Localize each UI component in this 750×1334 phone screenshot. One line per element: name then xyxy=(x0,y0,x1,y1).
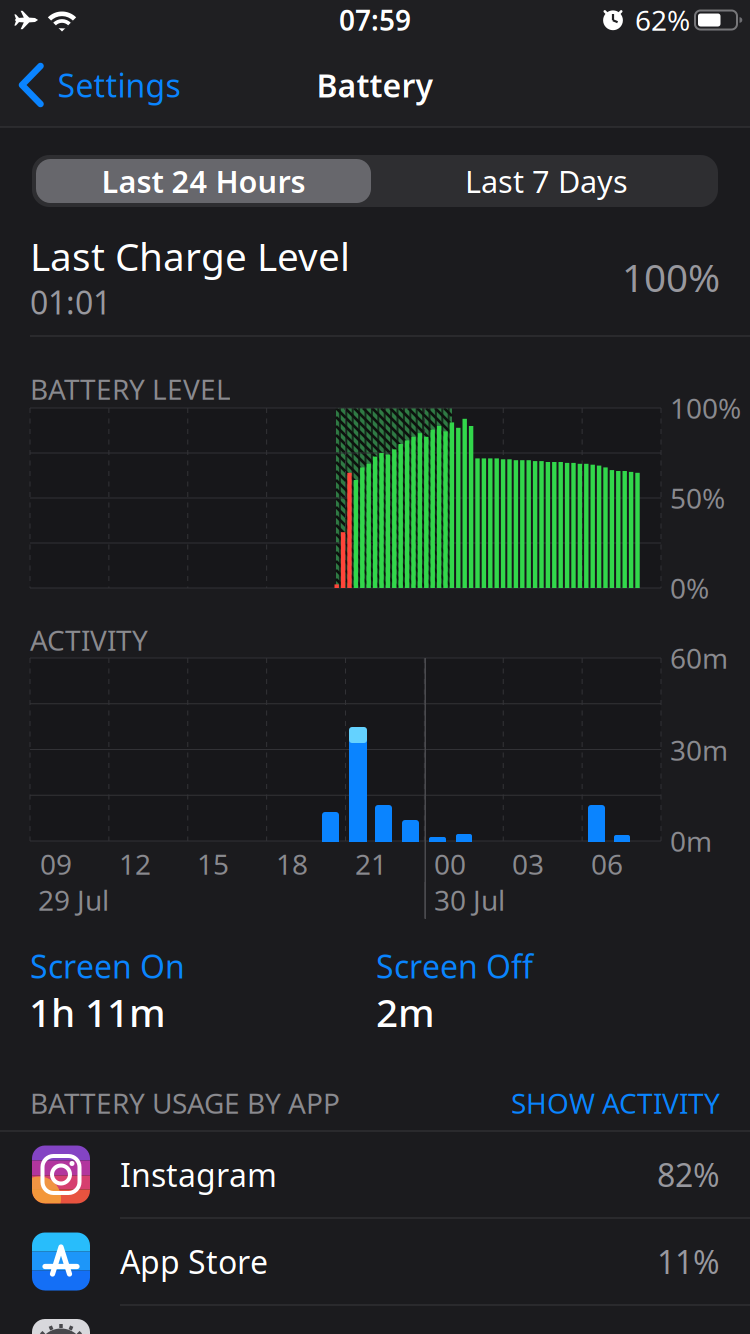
staticText: 15 xyxy=(197,845,229,883)
staticText: 0% xyxy=(670,569,709,607)
staticText: 62% xyxy=(635,1,690,39)
staticText: 82% xyxy=(657,1153,720,1196)
staticText: 1h 11m xyxy=(29,986,166,1038)
staticText: 11% xyxy=(657,1240,720,1283)
staticText: Last 24 Hours xyxy=(101,161,305,201)
staticText: 03 xyxy=(512,845,544,883)
button[interactable]: Instagram xyxy=(0,1131,750,1218)
staticText: 06 xyxy=(591,845,623,883)
staticText: SHOW ACTIVITY xyxy=(511,1084,720,1122)
staticText: 30m xyxy=(670,731,728,769)
staticText: 29 Jul xyxy=(38,881,109,919)
staticText: Screen Off xyxy=(376,945,533,987)
staticText: 100% xyxy=(622,251,720,303)
staticText: 00 xyxy=(434,845,466,883)
button[interactable]: App Store xyxy=(0,1218,750,1305)
staticText: 100% xyxy=(670,389,741,427)
staticText: Last 7 Days xyxy=(465,161,628,201)
button[interactable]: Settings xyxy=(32,1319,90,1334)
button[interactable]: SHOW ACTIVITY xyxy=(420,1084,720,1122)
staticText: BATTERY LEVEL xyxy=(30,370,231,408)
staticText: BATTERY USAGE BY APP xyxy=(30,1084,340,1122)
staticText: Instagram xyxy=(120,1153,277,1196)
staticText: 50% xyxy=(670,479,725,517)
staticText: ACTIVITY xyxy=(30,621,148,659)
staticText: 09 xyxy=(40,845,72,883)
staticText: 2m xyxy=(376,986,435,1038)
staticText: 0m xyxy=(670,822,712,860)
button[interactable]: Settings xyxy=(11,61,180,109)
staticText: 01:01 xyxy=(30,281,111,323)
staticText: 21 xyxy=(355,845,387,883)
staticText: Settings xyxy=(57,64,180,106)
staticText: Screen On xyxy=(30,945,185,987)
staticText: Battery xyxy=(316,64,433,106)
staticText: Last Charge Level xyxy=(30,230,350,282)
staticText: 30 Jul xyxy=(434,881,505,919)
staticText: 60m xyxy=(670,639,728,677)
staticText: 12 xyxy=(119,845,151,883)
button[interactable]: Last 7 Days xyxy=(375,155,718,207)
button[interactable]: Last 24 Hours xyxy=(32,155,375,207)
staticText: 18 xyxy=(276,845,308,883)
staticText: App Store xyxy=(120,1240,268,1283)
staticText: 07:59 xyxy=(339,1,411,39)
